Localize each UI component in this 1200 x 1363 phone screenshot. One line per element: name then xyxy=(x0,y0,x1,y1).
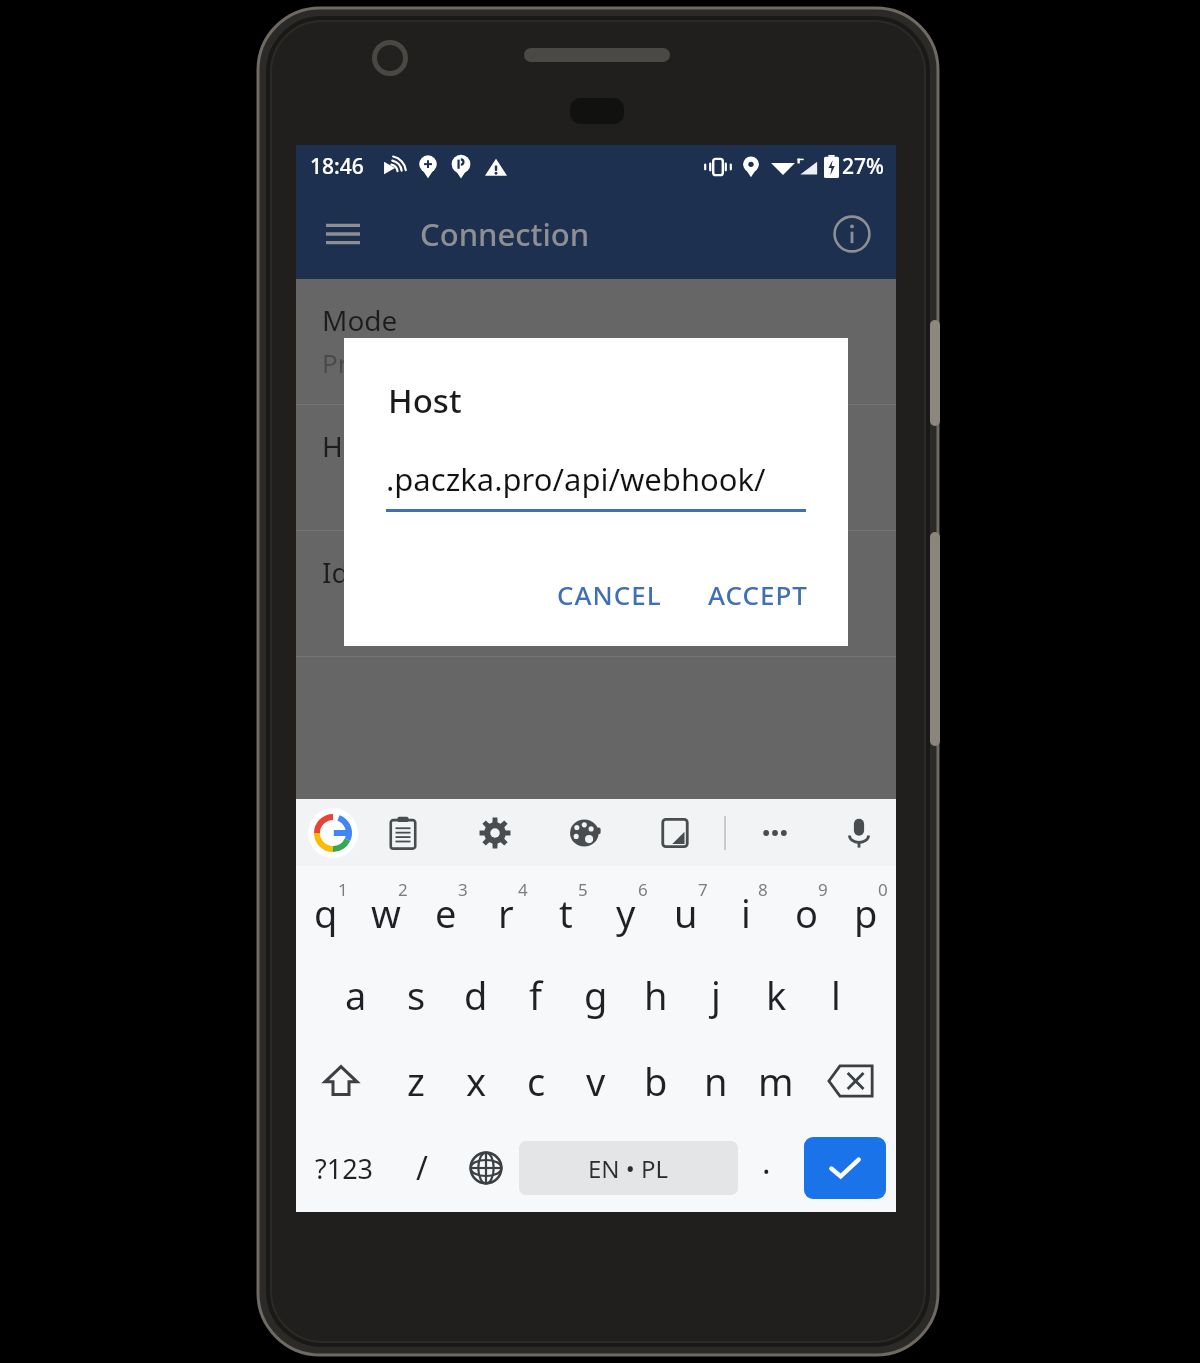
button[interactable]: n xyxy=(686,1038,746,1124)
staticText: 7 xyxy=(698,878,708,901)
staticText: y xyxy=(616,887,636,939)
button[interactable]: d xyxy=(446,952,506,1038)
button[interactable]: l xyxy=(806,952,866,1038)
button[interactable]: H xyxy=(296,405,896,530)
staticText: 5 xyxy=(578,878,588,901)
button[interactable]: z xyxy=(386,1038,446,1124)
staticText: 9 xyxy=(818,878,828,901)
button[interactable]: 2 xyxy=(356,866,416,952)
button[interactable]: 3 xyxy=(416,866,476,952)
staticText: e xyxy=(435,887,457,939)
staticText: l xyxy=(831,969,841,1021)
staticText: q xyxy=(314,887,338,939)
staticText: ?123 xyxy=(315,1150,374,1187)
button[interactable]: ACCEPT xyxy=(694,565,822,624)
staticText: s xyxy=(407,969,426,1021)
staticText: j xyxy=(711,969,721,1021)
staticText: c xyxy=(527,1055,546,1107)
button[interactable]: 1 xyxy=(296,866,356,952)
button[interactable]: Information xyxy=(824,206,880,262)
staticText: o xyxy=(795,887,818,939)
button[interactable]: ?123 xyxy=(296,1124,392,1212)
button[interactable]: h xyxy=(626,952,686,1038)
staticText: 2 xyxy=(398,878,408,901)
button[interactable]: Mode xyxy=(296,279,896,404)
button[interactable]: s xyxy=(386,952,446,1038)
staticText: ACCEPT xyxy=(708,577,808,612)
button[interactable]: . xyxy=(738,1124,794,1212)
button[interactable]: b xyxy=(626,1038,686,1124)
button[interactable]: .paczka.pro/api/webhook/7745 xyxy=(386,458,806,500)
button[interactable]: Backspace xyxy=(806,1038,896,1124)
staticText: Host xyxy=(388,378,462,423)
staticText: w xyxy=(371,887,401,939)
button[interactable]: m xyxy=(746,1038,806,1124)
button[interactable]: Clipboard xyxy=(380,810,426,856)
staticText: 3 xyxy=(458,878,468,901)
staticText: k xyxy=(766,969,787,1021)
staticText: 8 xyxy=(758,878,768,901)
button[interactable]: Voice input xyxy=(836,810,882,856)
button[interactable]: 8 xyxy=(716,866,776,952)
button[interactable]: 4 xyxy=(476,866,536,952)
staticText: n xyxy=(704,1055,728,1107)
staticText: r xyxy=(498,887,514,939)
staticText: a xyxy=(345,969,367,1021)
button[interactable]: / xyxy=(392,1124,452,1212)
button[interactable]: 7 xyxy=(656,866,716,952)
button[interactable]: EN • PL xyxy=(519,1141,738,1195)
staticText: H xyxy=(322,427,343,465)
staticText: t xyxy=(559,887,573,939)
staticText: Mode xyxy=(322,301,398,339)
button[interactable]: 5 xyxy=(536,866,596,952)
button[interactable]: k xyxy=(746,952,806,1038)
button[interactable]: Id xyxy=(296,531,896,656)
staticText: g xyxy=(584,969,608,1021)
staticText: CANCEL xyxy=(557,577,662,612)
button[interactable]: v xyxy=(566,1038,626,1124)
staticText: b xyxy=(644,1055,668,1107)
button[interactable]: Change language xyxy=(452,1124,519,1212)
staticText: p xyxy=(854,887,878,939)
button[interactable]: Settings xyxy=(472,810,518,856)
button[interactable]: 6 xyxy=(596,866,656,952)
button[interactable]: g xyxy=(566,952,626,1038)
button[interactable]: Done xyxy=(804,1137,886,1199)
staticText: h xyxy=(644,969,668,1021)
staticText: / xyxy=(416,1146,428,1190)
staticText: 0 xyxy=(878,878,888,901)
button[interactable]: Google search xyxy=(306,806,360,860)
staticText: 6 xyxy=(638,878,648,901)
button[interactable]: f xyxy=(506,952,566,1038)
button[interactable]: More options xyxy=(752,810,798,856)
staticText: 18:46 xyxy=(310,152,364,181)
button[interactable]: Shift xyxy=(296,1038,386,1124)
staticText: Pr xyxy=(322,345,349,380)
button[interactable]: j xyxy=(686,952,746,1038)
staticText: Id xyxy=(322,553,349,591)
staticText: f xyxy=(529,969,543,1021)
button[interactable]: Themes xyxy=(562,810,608,856)
staticText: d xyxy=(464,969,488,1021)
staticText: 1 xyxy=(338,878,348,901)
button[interactable]: CANCEL xyxy=(543,565,676,624)
button[interactable]: 9 xyxy=(776,866,836,952)
button[interactable]: c xyxy=(506,1038,566,1124)
button[interactable]: x xyxy=(446,1038,506,1124)
button[interactable]: 0 xyxy=(836,866,896,952)
button[interactable]: Stickers xyxy=(652,810,698,856)
staticText: x xyxy=(466,1055,487,1107)
button[interactable]: Open navigation menu xyxy=(314,205,372,263)
staticText: 4 xyxy=(518,878,528,901)
staticText: EN • PL xyxy=(588,1152,669,1185)
staticText: 27% xyxy=(842,152,884,181)
staticText: z xyxy=(407,1055,425,1107)
staticText: u xyxy=(674,887,698,939)
staticText: v xyxy=(586,1055,606,1107)
staticText: i xyxy=(741,887,751,939)
staticText: Connection xyxy=(420,213,590,255)
staticText: . xyxy=(762,1140,771,1184)
button[interactable]: a xyxy=(326,952,386,1038)
staticText: m xyxy=(758,1055,794,1107)
